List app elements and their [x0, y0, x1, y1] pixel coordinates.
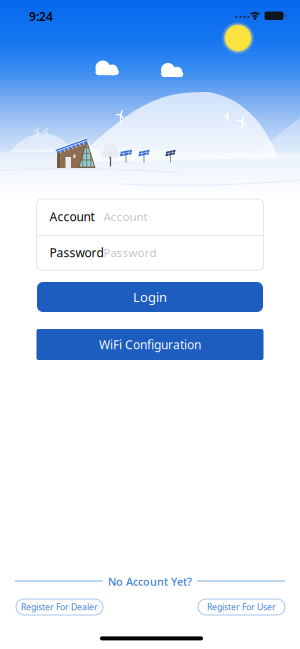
staticText: Password: [103, 245, 156, 260]
staticText: Account: [49, 208, 94, 224]
staticText: WiFi Configuration: [99, 336, 201, 352]
staticText: Register For Dealer: [21, 601, 98, 613]
button[interactable]: Password text field: [36, 235, 263, 270]
button[interactable]: Register For Dealer: [16, 599, 103, 615]
staticText: Password: [49, 244, 103, 260]
button[interactable]: Account text field: [36, 199, 263, 234]
button[interactable]: WiFi Configuration: [36, 329, 263, 360]
staticText: Account: [103, 209, 147, 224]
staticText: Login: [133, 288, 167, 306]
button[interactable]: Login: [37, 282, 263, 312]
button[interactable]: Register For User: [198, 599, 285, 615]
staticText: 9:24: [29, 8, 53, 24]
staticText: Register For User: [207, 601, 276, 613]
staticText: No Account Yet?: [108, 574, 192, 589]
